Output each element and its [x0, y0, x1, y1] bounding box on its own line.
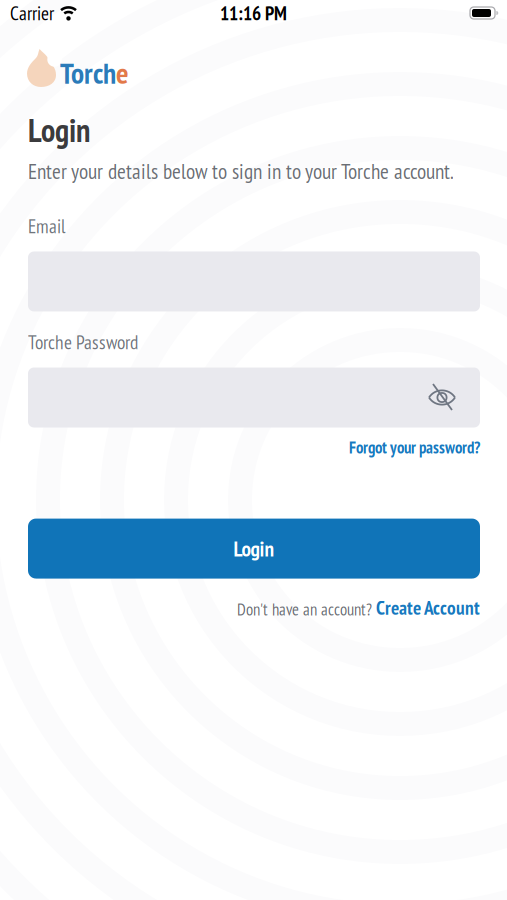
staticText: 11:16 PM — [220, 0, 287, 25]
staticText: Torch — [60, 54, 116, 92]
button[interactable]: Forgot your password? — [349, 436, 480, 458]
staticText: Torche Password — [28, 329, 138, 354]
staticText: Email — [28, 213, 66, 238]
staticText: Login — [233, 535, 274, 562]
staticText: Carrier — [10, 0, 54, 25]
button[interactable]: Show password — [428, 383, 480, 412]
staticText: Don't have an account? — [237, 598, 372, 620]
button[interactable]: Email — [0, 251, 507, 311]
button[interactable]: Torche Password — [0, 367, 507, 427]
staticText: Create Account — [376, 595, 480, 620]
staticText: e — [116, 54, 129, 92]
staticText: Forgot your password? — [349, 436, 480, 458]
button[interactable]: Login — [0, 519, 507, 579]
staticText: Login — [28, 109, 90, 151]
button[interactable]: Create Account — [376, 595, 480, 620]
staticText: Enter your details below to sign in to y… — [28, 157, 454, 185]
